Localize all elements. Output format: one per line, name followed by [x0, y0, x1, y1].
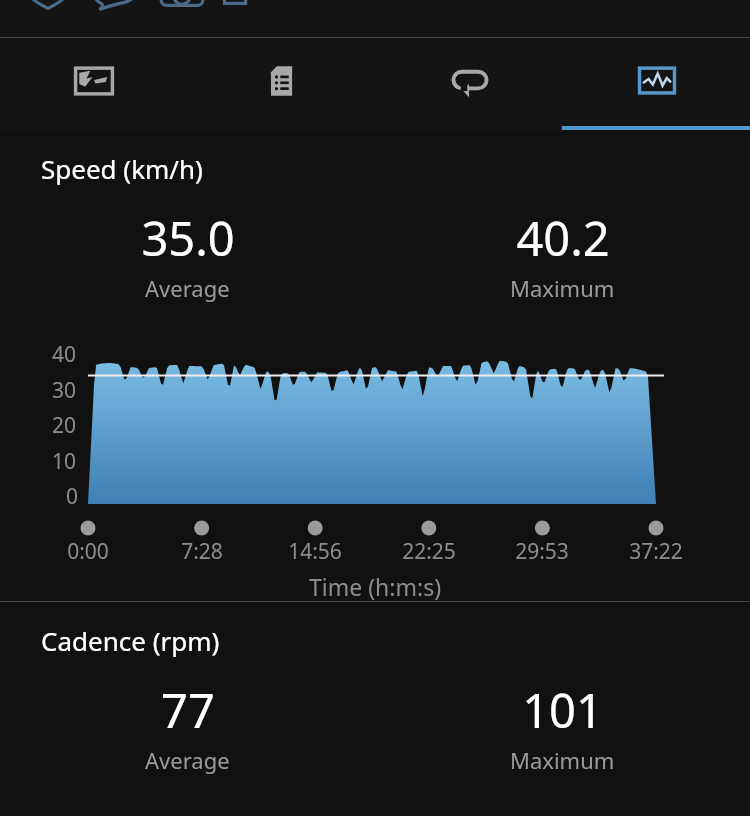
staticText: 30 — [52, 376, 77, 405]
button[interactable]: Laps — [376, 38, 564, 130]
staticText: 77 — [161, 678, 215, 742]
staticText: 22:25 — [402, 537, 456, 566]
staticText: Maximum — [510, 745, 615, 775]
button[interactable]: Like — [20, 0, 76, 15]
staticText: 7:28 — [181, 537, 223, 566]
staticText: Maximum — [510, 273, 615, 303]
staticText: 40.2 — [516, 206, 610, 270]
button[interactable]: Details — [212, 0, 260, 13]
staticText: 29:53 — [515, 537, 569, 566]
button[interactable]: Comment — [90, 0, 142, 17]
staticText: 14:56 — [288, 537, 342, 566]
staticText: Speed (km/h) — [41, 151, 203, 186]
staticText: 0:00 — [67, 537, 109, 566]
staticText: 10 — [52, 447, 77, 476]
button[interactable]: Summary — [188, 38, 376, 130]
staticText: 101 — [522, 678, 603, 742]
staticText: Cadence (rpm) — [41, 623, 220, 658]
staticText: Average — [145, 273, 230, 303]
button[interactable]: Map — [0, 38, 188, 130]
button[interactable]: Camera — [156, 0, 208, 15]
staticText: 40 — [52, 340, 77, 369]
staticText: 20 — [52, 411, 77, 440]
staticText: 37:22 — [629, 537, 683, 566]
staticText: 35.0 — [141, 206, 235, 270]
staticText: 0 — [66, 482, 79, 511]
button[interactable]: Charts — [564, 38, 750, 130]
staticText: Time (h:m:s) — [309, 571, 442, 602]
staticText: Average — [145, 745, 230, 775]
